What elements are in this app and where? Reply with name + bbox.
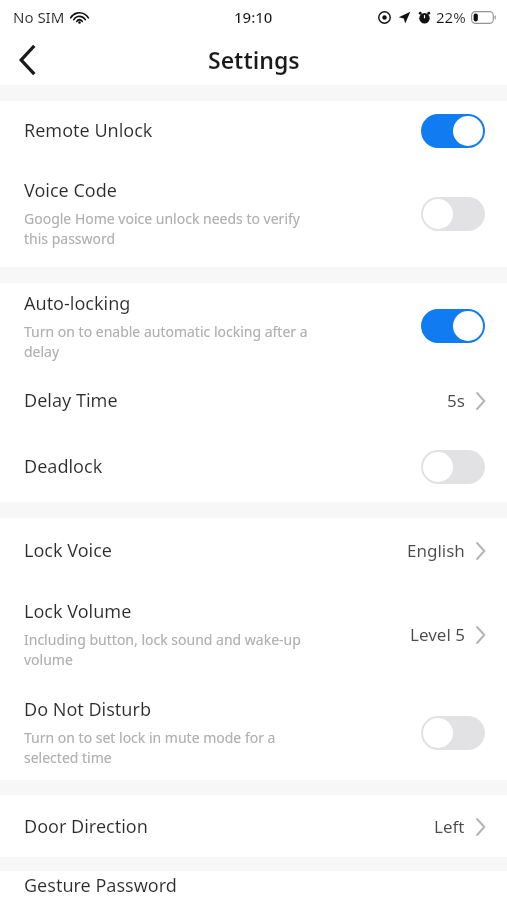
button[interactable]: Deadlock [0, 431, 507, 502]
button[interactable]: Toggle off [421, 197, 485, 231]
staticText: Lock Volume [24, 599, 132, 624]
staticText: Do Not Disturb [24, 697, 151, 722]
staticText: 22% [436, 7, 466, 27]
staticText: Left [434, 815, 465, 838]
staticText: Turn on to enable automatic locking afte… [24, 322, 308, 362]
staticText: Remote Unlock [24, 118, 153, 143]
button[interactable]: Toggle off [421, 450, 485, 484]
button[interactable]: Lock Voice [0, 518, 507, 583]
button[interactable]: Do Not Disturb [0, 685, 507, 780]
staticText: Deadlock [24, 454, 103, 479]
button[interactable]: Back [0, 34, 54, 85]
staticText: Voice Code [24, 178, 117, 203]
button[interactable]: Gesture Password [0, 871, 507, 900]
button[interactable]: Door Direction [0, 795, 507, 857]
button[interactable]: Toggle off [421, 716, 485, 750]
button[interactable]: Delay Time [0, 369, 507, 431]
button[interactable]: Auto-locking [0, 283, 507, 369]
staticText: Level 5 [410, 623, 465, 646]
staticText: Google Home voice unlock needs to verify… [24, 209, 300, 249]
staticText: Including button, lock sound and wake-up… [24, 630, 301, 670]
staticText: Auto-locking [24, 291, 131, 316]
staticText: Gesture Password [24, 873, 177, 898]
staticText: Settings [208, 44, 300, 75]
staticText: English [407, 539, 465, 562]
staticText: 19:10 [234, 7, 273, 27]
button[interactable]: Toggle on [421, 114, 485, 148]
staticText: 5s [447, 389, 465, 412]
staticText: Lock Voice [24, 538, 113, 563]
staticText: Delay Time [24, 388, 118, 413]
button[interactable]: Voice Code [0, 160, 507, 267]
button[interactable]: Toggle on [421, 309, 485, 343]
staticText: No SIM [13, 7, 65, 27]
staticText: Turn on to set lock in mute mode for a s… [24, 728, 276, 768]
button[interactable]: Lock Volume [0, 583, 507, 685]
button[interactable]: Remote Unlock [0, 101, 507, 160]
staticText: Door Direction [24, 814, 148, 839]
